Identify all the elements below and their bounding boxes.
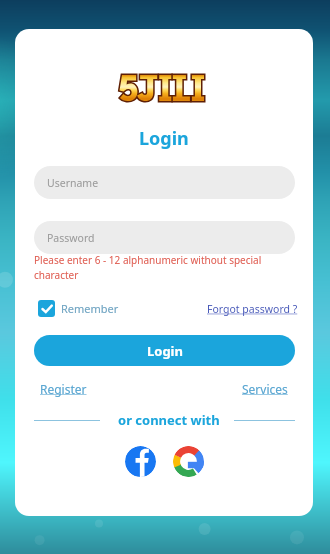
button[interactable]: Register [40,381,87,397]
staticText: Login [147,342,183,360]
button[interactable]: Username [34,166,295,199]
staticText: Password [47,231,95,245]
staticText: Remember [61,301,119,316]
button[interactable]: Services [242,381,288,397]
button[interactable]: Sign in with Google [173,446,204,477]
staticText: Login [139,126,189,151]
button[interactable]: Forgot password ? [207,302,298,316]
staticText: or connect with [118,411,220,429]
button[interactable]: Remember [38,300,119,317]
button[interactable]: Login [34,335,295,366]
button[interactable]: Password [34,221,295,254]
staticText: Please enter 6 - 12 alphanumeric without… [34,253,274,282]
staticText: Username [47,176,99,190]
button[interactable]: Sign in with Facebook [125,446,156,477]
